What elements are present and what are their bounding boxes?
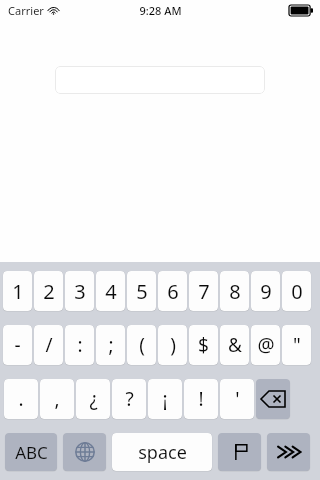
button[interactable]: (	[127, 325, 156, 365]
button[interactable]: )	[158, 325, 187, 365]
staticText: 9	[260, 278, 272, 305]
staticText: :	[77, 332, 83, 358]
button[interactable]: "	[282, 325, 311, 365]
button[interactable]: ¡	[148, 379, 182, 419]
staticText: 6	[167, 278, 179, 305]
button[interactable]: ;	[96, 325, 125, 365]
staticText: 2	[43, 278, 55, 305]
staticText: )	[170, 332, 176, 358]
button[interactable]: 3	[65, 271, 94, 311]
staticText: ,	[54, 386, 60, 412]
button[interactable]: 0	[282, 271, 311, 311]
button[interactable]: 2	[34, 271, 63, 311]
staticText: 1	[12, 278, 24, 305]
staticText: 9:28 AM	[139, 3, 182, 18]
button[interactable]: 9	[251, 271, 280, 311]
staticText: (	[139, 332, 145, 358]
button[interactable]: 4	[96, 271, 125, 311]
button[interactable]: -	[3, 325, 32, 365]
button[interactable]: 1	[3, 271, 32, 311]
staticText: -	[14, 332, 21, 358]
button[interactable]: ,	[40, 379, 74, 419]
staticText: 3	[74, 278, 86, 305]
staticText: space	[138, 440, 187, 465]
staticText: $	[198, 332, 209, 358]
button[interactable]: space	[112, 433, 212, 471]
button[interactable]: '	[220, 379, 254, 419]
staticText: &	[228, 332, 242, 358]
staticText: 5	[136, 278, 148, 305]
button[interactable]: 7	[189, 271, 218, 311]
button[interactable]: $	[189, 325, 218, 365]
staticText: !	[198, 386, 204, 412]
staticText: ;	[108, 332, 114, 358]
staticText: @	[257, 332, 275, 358]
button[interactable]: .	[4, 379, 38, 419]
staticText: "	[293, 332, 301, 358]
button[interactable]: /	[34, 325, 63, 365]
button[interactable]: Flag	[218, 433, 261, 471]
button[interactable]: @	[251, 325, 280, 365]
button[interactable]: 5	[127, 271, 156, 311]
staticText: 4	[105, 278, 117, 305]
staticText: '	[235, 386, 240, 412]
staticText: 8	[229, 278, 241, 305]
button[interactable]: :	[65, 325, 94, 365]
button[interactable]: !	[184, 379, 218, 419]
button[interactable]: 6	[158, 271, 187, 311]
button[interactable]: ?	[112, 379, 146, 419]
staticText: Carrier	[8, 3, 44, 18]
button[interactable]: &	[220, 325, 249, 365]
staticText: .	[18, 386, 24, 412]
staticText: ?	[125, 386, 134, 412]
button[interactable]: ABC	[5, 433, 57, 471]
button[interactable]: Delete	[256, 379, 290, 419]
button[interactable]: 8	[220, 271, 249, 311]
staticText: ¿	[89, 386, 98, 412]
staticText: /	[45, 332, 53, 358]
staticText: ABC	[15, 441, 48, 464]
staticText: ¡	[162, 386, 168, 412]
button[interactable]	[55, 66, 265, 94]
button[interactable]: ¿	[76, 379, 110, 419]
staticText: 0	[291, 278, 303, 305]
button[interactable]: Next	[267, 433, 310, 471]
button[interactable]: Change keyboard	[63, 433, 106, 471]
staticText: 7	[198, 278, 210, 305]
